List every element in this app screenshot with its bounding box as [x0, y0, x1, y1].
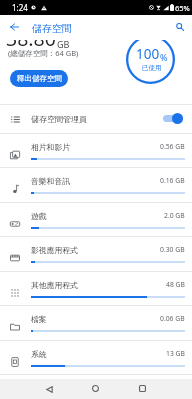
button[interactable]: 儲存空間管理員	[0, 105, 192, 133]
staticText: 遊戲	[31, 211, 47, 221]
button[interactable]: 遊戲	[0, 203, 192, 237]
button[interactable]: 影視應用程式	[0, 237, 192, 272]
staticText: 2.0 GB	[164, 211, 185, 220]
button[interactable]: Recents	[131, 379, 154, 399]
staticText: %	[160, 51, 168, 63]
staticText: 儲存空間	[32, 22, 72, 35]
staticText: 38.80	[6, 25, 56, 52]
staticText: 0.56 GB	[160, 142, 185, 151]
staticText: (總儲存空間：64 GB)	[8, 48, 79, 58]
button[interactable]: 系統	[0, 341, 192, 375]
staticText: 100	[136, 45, 160, 63]
staticText: 檔案	[31, 314, 47, 324]
staticText: 系統	[31, 349, 47, 359]
staticText: 1:24	[12, 2, 28, 13]
staticText: 儲存空間管理員	[31, 114, 87, 124]
staticText: 釋出儲存空間	[17, 74, 62, 83]
staticText: 已使用	[142, 64, 162, 72]
button[interactable]: 其他應用程式	[0, 272, 192, 306]
staticText: 48 GB	[166, 280, 185, 289]
staticText: 音樂和音訊	[31, 176, 70, 186]
button[interactable]: Back	[4, 17, 24, 37]
button[interactable]: 相片和影片	[0, 134, 192, 168]
button[interactable]: 釋出儲存空間	[10, 70, 68, 87]
button[interactable]: Back	[38, 379, 61, 399]
staticText: 0.16 GB	[160, 176, 185, 185]
staticText: GB	[57, 38, 70, 50]
staticText: 0.30 GB	[160, 245, 185, 254]
staticText: 0.06 GB	[160, 314, 185, 323]
staticText: 影視應用程式	[31, 245, 78, 255]
staticText: 相片和影片	[31, 142, 70, 152]
button[interactable]: Home	[84, 379, 107, 399]
button[interactable]: 音樂和音訊	[0, 168, 192, 203]
button[interactable]: Storage manager toggle	[152, 105, 192, 133]
staticText: 65%	[175, 3, 190, 13]
staticText: 其他應用程式	[31, 280, 78, 290]
staticText: 13 GB	[166, 349, 185, 358]
button[interactable]: Search	[170, 17, 190, 37]
button[interactable]: 檔案	[0, 306, 192, 341]
